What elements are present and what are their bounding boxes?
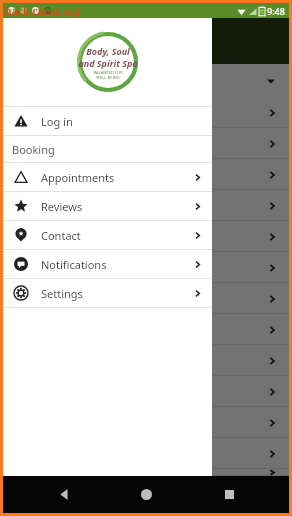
button[interactable]: Appointments (3, 163, 212, 191)
staticText: Body, Soul (86, 45, 130, 57)
staticText: Booking (12, 142, 55, 157)
staticText: and Spirit Spa (78, 57, 138, 69)
button[interactable]: Recent apps (207, 476, 251, 513)
staticText: Contact (41, 228, 81, 243)
button[interactable]: Contact (3, 221, 212, 249)
button[interactable]: Settings (3, 279, 212, 307)
button[interactable]: Home (124, 476, 168, 513)
staticText: Appointments (41, 170, 115, 185)
button[interactable]: Log in (3, 107, 212, 135)
staticText: Notifications (41, 257, 107, 272)
staticText: hack-cheat.org (5, 4, 81, 18)
staticText: 9:48 (267, 5, 285, 17)
staticText: BALANCED FOR (93, 70, 123, 75)
staticText: Settings (41, 286, 83, 301)
staticText: Log in (41, 114, 73, 129)
button[interactable]: Reviews (3, 192, 212, 220)
staticText: WELL-BEING (96, 75, 120, 80)
staticText: Reviews (41, 199, 83, 214)
button[interactable]: Notifications (3, 250, 212, 278)
button[interactable]: Back (42, 476, 86, 513)
